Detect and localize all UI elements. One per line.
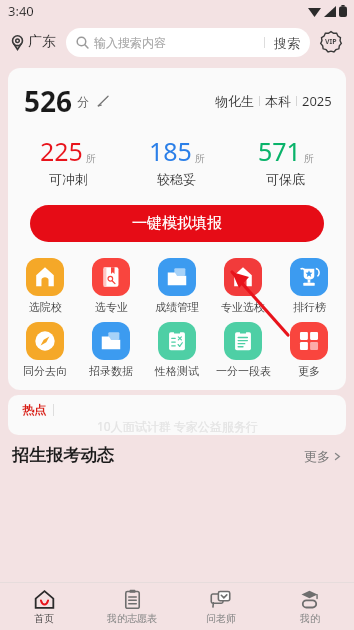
staticText: 185 <box>149 134 192 168</box>
button[interactable]: 成绩管理 <box>144 258 210 314</box>
staticText: 一分一段表 <box>216 364 271 378</box>
staticText: 可冲刺 <box>49 171 88 187</box>
staticText: 225 <box>40 134 83 168</box>
button[interactable]: 广东 <box>10 33 60 51</box>
button[interactable]: 输入搜索内容 <box>66 28 310 57</box>
staticText: 更多 <box>304 448 330 464</box>
button[interactable]: 同分去向 <box>12 322 78 378</box>
staticText: 选院校 <box>29 300 62 314</box>
button[interactable]: 专业选校 <box>210 258 276 314</box>
button[interactable]: VIP <box>318 29 344 55</box>
button[interactable]: 一分一段表 <box>210 322 276 378</box>
button[interactable]: 更多 <box>304 448 342 464</box>
staticText: 搜索 <box>274 35 300 51</box>
button[interactable]: 更多 <box>276 322 342 378</box>
staticText: 问老师 <box>206 612 236 625</box>
button[interactable]: 问老师 <box>176 583 265 630</box>
staticText: 分 <box>77 94 89 109</box>
button[interactable]: 我的 <box>265 583 354 630</box>
button[interactable]: 选专业 <box>78 258 144 314</box>
staticText: VIP <box>325 37 337 47</box>
button[interactable]: 225 <box>14 134 122 187</box>
staticText: 输入搜索内容 <box>94 35 166 50</box>
staticText: 性格测试 <box>155 364 199 378</box>
staticText: 物化生 <box>215 93 254 109</box>
staticText: 我的志愿表 <box>107 612 157 625</box>
button[interactable]: 185 <box>122 134 231 187</box>
staticText: 广东 <box>28 33 56 51</box>
staticText: 招录数据 <box>89 364 133 378</box>
button[interactable]: 选院校 <box>12 258 78 314</box>
staticText: 热点 <box>22 402 46 417</box>
staticText: 排行榜 <box>293 300 326 314</box>
button[interactable]: 我的志愿表 <box>88 583 176 630</box>
staticText: 所 <box>195 152 205 165</box>
staticText: 成绩管理 <box>155 300 199 314</box>
staticText: 本科 <box>265 93 291 109</box>
staticText: 首页 <box>34 612 54 625</box>
button[interactable]: 一键模拟填报 <box>30 205 324 242</box>
staticText: 招生报考动态 <box>12 445 114 466</box>
button[interactable]: 招录数据 <box>78 322 144 378</box>
staticText: 我的 <box>300 612 320 625</box>
staticText: 所 <box>304 152 314 165</box>
staticText: 可保底 <box>266 171 305 187</box>
button[interactable]: 热点 <box>8 395 346 435</box>
button[interactable]: 排行榜 <box>276 258 342 314</box>
staticText: 专业选校 <box>221 300 265 314</box>
staticText: 一键模拟填报 <box>132 214 222 233</box>
staticText: 较稳妥 <box>157 171 196 187</box>
staticText: 571 <box>258 134 301 168</box>
staticText: 526 <box>24 82 73 120</box>
button[interactable]: 编辑分数 <box>96 94 110 108</box>
staticText: 更多 <box>298 364 320 378</box>
staticText: 同分去向 <box>23 364 67 378</box>
button[interactable]: 性格测试 <box>144 322 210 378</box>
staticText: 2025 <box>302 92 332 110</box>
staticText: 3:40 <box>8 2 34 20</box>
staticText: 所 <box>86 152 96 165</box>
staticText: 10人面试计群 专家公益服务行 <box>97 418 258 434</box>
button[interactable]: 571 <box>231 134 340 187</box>
staticText: 选专业 <box>95 300 128 314</box>
button[interactable]: 首页 <box>0 583 88 630</box>
